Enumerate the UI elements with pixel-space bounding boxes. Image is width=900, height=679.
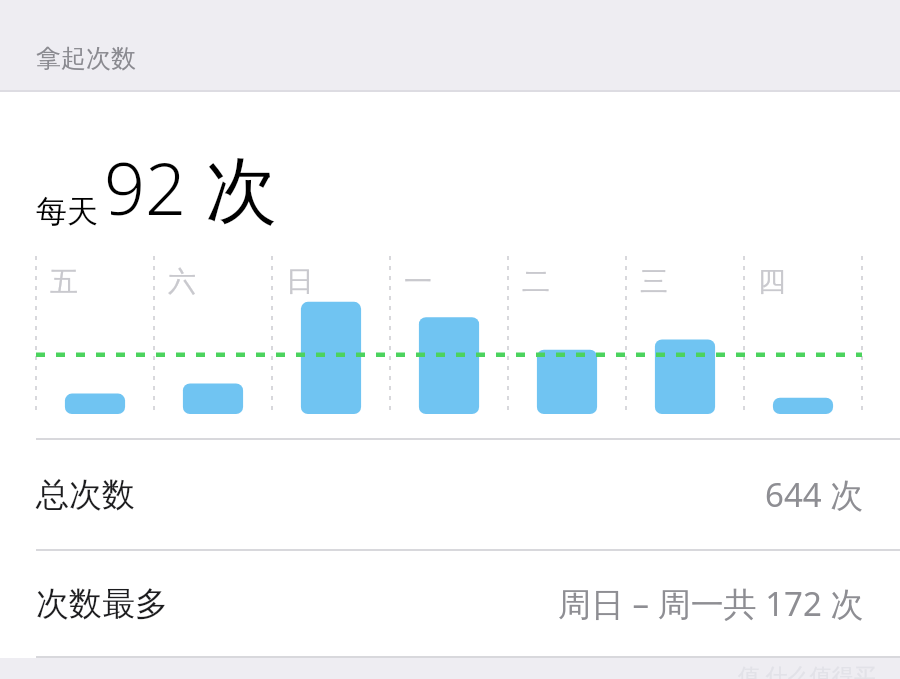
staticText: 拿起次数: [36, 43, 136, 74]
staticText: 每天: [36, 192, 98, 231]
staticText: 值 什么值得买: [738, 660, 876, 679]
staticText: 644 次: [765, 472, 864, 517]
staticText: 一: [404, 264, 432, 299]
staticText: 四: [758, 264, 786, 299]
staticText: 总次数: [36, 474, 135, 516]
staticText: 周日 – 周一共 172 次: [558, 581, 864, 626]
button[interactable]: 拿起次数: [0, 0, 900, 90]
staticText: 日: [286, 264, 314, 299]
staticText: 二: [522, 264, 550, 299]
button[interactable]: 总次数: [0, 440, 900, 549]
other: 每日拿起次数柱状图: [0, 256, 900, 416]
staticText: 次数最多: [36, 583, 168, 625]
button[interactable]: 次数最多: [0, 551, 900, 656]
staticText: 三: [640, 264, 668, 299]
staticText: 五: [50, 264, 78, 299]
staticText: 92 次: [104, 138, 277, 236]
staticText: 六: [168, 264, 196, 299]
